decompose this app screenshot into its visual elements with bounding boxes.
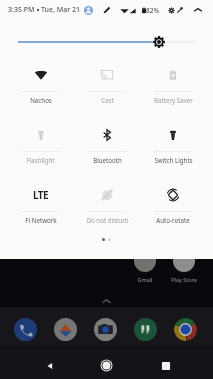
staticText: 82% bbox=[146, 6, 159, 15]
staticText: Tue, Mar 21 bbox=[41, 5, 80, 15]
button[interactable]: Auto-rotate bbox=[140, 175, 206, 235]
button[interactable]: Battery Saver bbox=[140, 55, 206, 115]
staticText: Bluetooth bbox=[93, 156, 122, 164]
staticText: Play Store bbox=[168, 276, 200, 283]
staticText: 3:35 PM bbox=[8, 5, 35, 15]
button[interactable] bbox=[54, 318, 77, 341]
staticText: Battery Saver bbox=[154, 96, 193, 104]
staticText: Flashlight bbox=[26, 156, 55, 164]
button[interactable] bbox=[94, 318, 117, 341]
button[interactable]: Edit bbox=[103, 6, 111, 14]
button[interactable]: Account bbox=[84, 6, 93, 15]
button[interactable]: Recents bbox=[160, 360, 172, 372]
button[interactable] bbox=[134, 250, 156, 272]
button[interactable]: Back bbox=[44, 360, 56, 372]
button[interactable]: Cast bbox=[74, 55, 140, 115]
button[interactable]: Nachos bbox=[7, 55, 74, 115]
button[interactable]: LTE bbox=[7, 175, 74, 235]
button[interactable] bbox=[174, 318, 197, 341]
staticText: Auto-rotate bbox=[156, 216, 190, 224]
button[interactable]: Flashlight bbox=[7, 115, 74, 175]
button[interactable]: Brightness bbox=[0, 0, 213, 259]
button[interactable]: Do not disturb bbox=[74, 175, 140, 235]
staticText: Do not disturb bbox=[86, 216, 129, 224]
button[interactable]: Switch Lights bbox=[140, 115, 206, 175]
button[interactable] bbox=[134, 318, 157, 341]
button[interactable] bbox=[173, 250, 195, 272]
button[interactable]: Collapse bbox=[194, 6, 202, 14]
staticText: Switch Lights bbox=[154, 156, 193, 164]
button[interactable]: Bluetooth bbox=[74, 115, 140, 175]
staticText: LTE bbox=[33, 188, 49, 202]
staticText: Gmail bbox=[133, 276, 157, 283]
staticText: Nachos bbox=[30, 96, 52, 104]
button[interactable]: Settings bbox=[168, 7, 175, 14]
button[interactable]: Home bbox=[100, 359, 113, 372]
button[interactable] bbox=[14, 318, 37, 341]
staticText: Cast bbox=[101, 96, 114, 104]
staticText: Fi Network bbox=[25, 216, 57, 224]
